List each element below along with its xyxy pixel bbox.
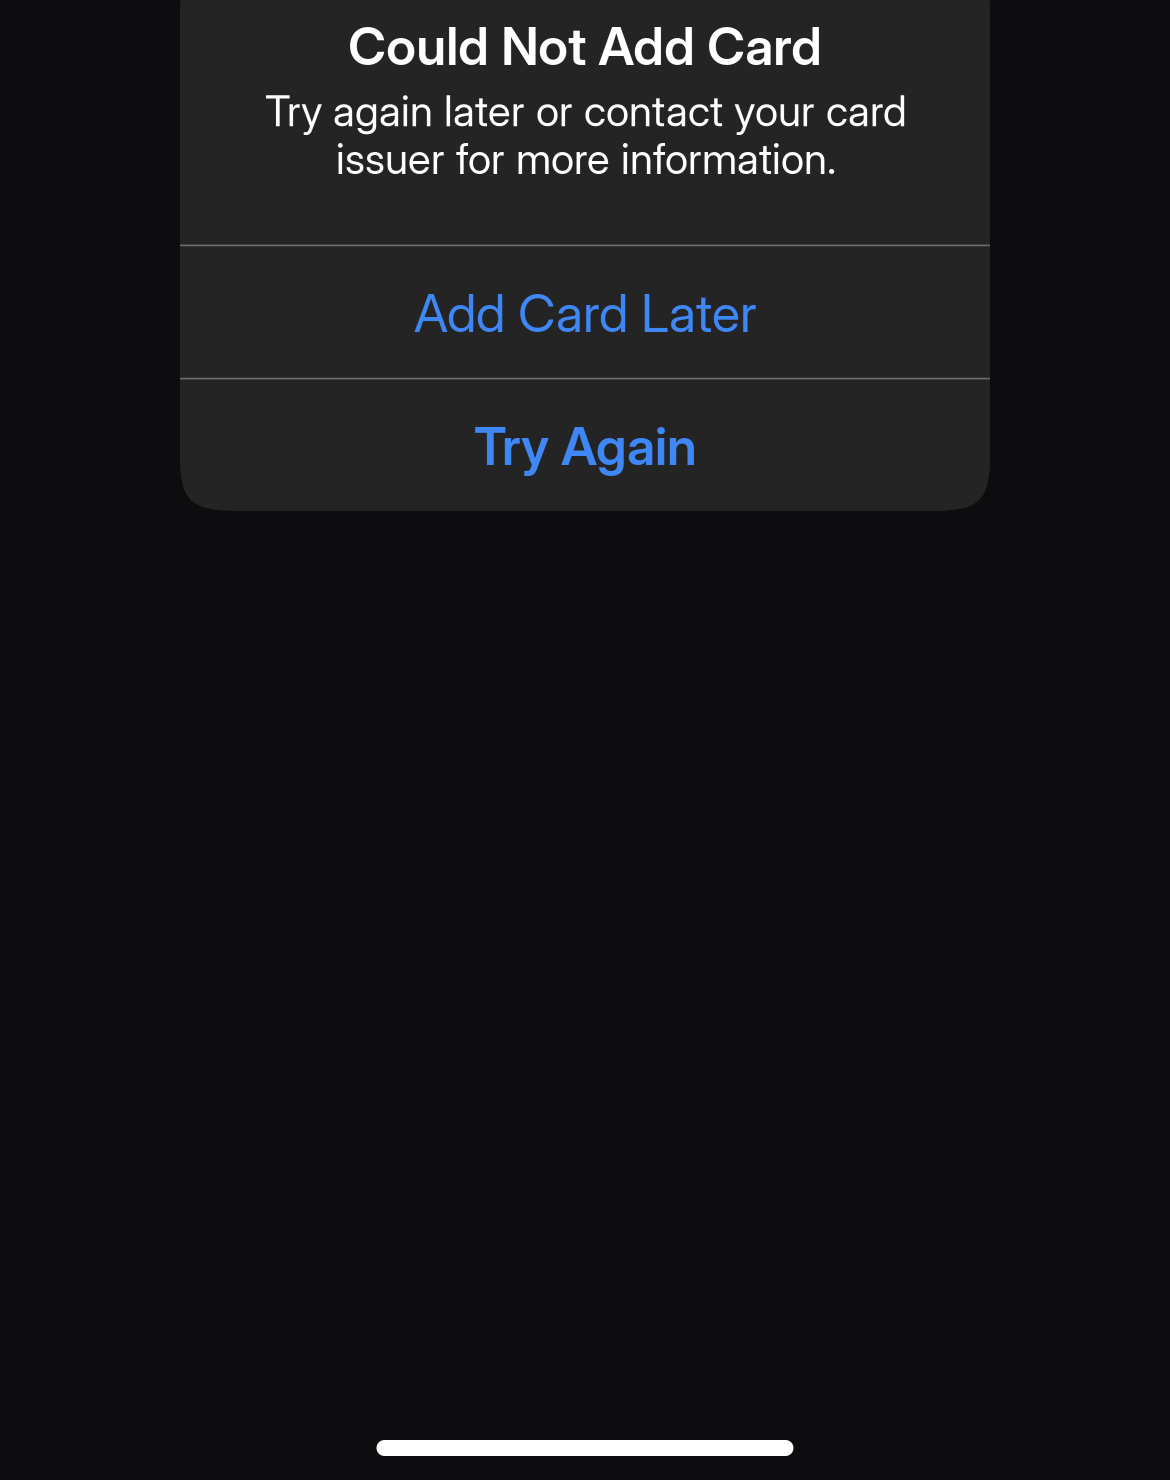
button[interactable]: Try Again [180,379,990,511]
staticText: Could Not Add Card [348,15,822,78]
button[interactable]: Add Card Later [180,245,990,379]
staticText: Try again later or contact your card iss… [265,85,907,184]
staticText: Try Again [474,414,697,477]
staticText: Add Card Later [414,282,757,345]
